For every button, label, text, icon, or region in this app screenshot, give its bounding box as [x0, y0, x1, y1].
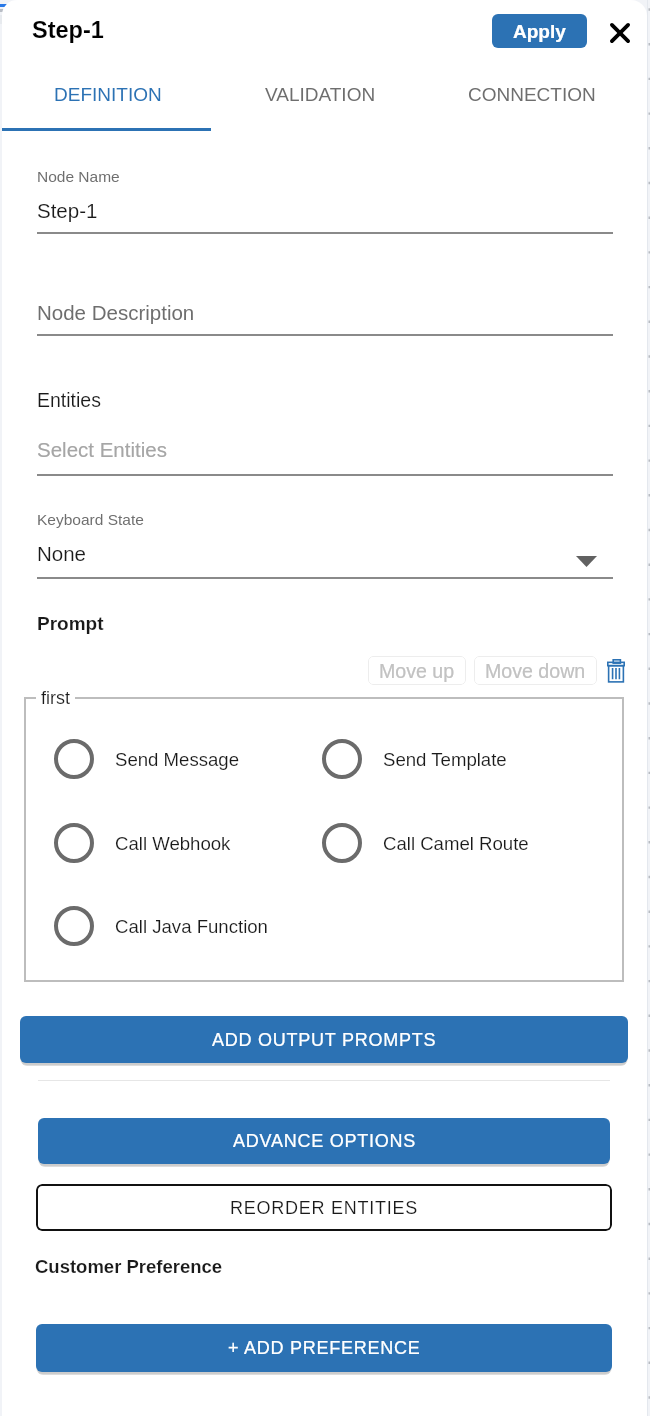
- staticText: ADVANCE OPTIONS: [233, 1131, 416, 1151]
- button[interactable]: Call Webhook: [54, 823, 322, 863]
- staticText: CONNECTION: [468, 84, 596, 105]
- button[interactable]: VALIDATION: [214, 62, 426, 131]
- staticText: Prompt: [37, 613, 104, 634]
- staticText: Step-1: [32, 17, 104, 43]
- staticText: first: [41, 688, 70, 708]
- button[interactable]: Send Message: [54, 739, 322, 779]
- staticText: Select Entities: [37, 438, 167, 461]
- button[interactable]: Call Java Function: [54, 906, 322, 946]
- staticText: Keyboard State: [37, 511, 144, 528]
- staticText: Send Template: [383, 749, 507, 770]
- button[interactable]: Send Template: [322, 739, 507, 779]
- staticText: Move up: [379, 660, 455, 682]
- button[interactable]: Call Camel Route: [322, 823, 529, 863]
- staticText: ADD OUTPUT PROMPTS: [212, 1030, 437, 1050]
- button[interactable]: Delete: [606, 656, 626, 685]
- staticText: None: [37, 542, 87, 565]
- button[interactable]: Apply: [492, 14, 587, 48]
- staticText: Step-1: [37, 199, 98, 222]
- button[interactable]: + ADD PREFERENCE: [36, 1324, 612, 1372]
- staticText: Apply: [513, 21, 566, 42]
- staticText: + ADD PREFERENCE: [228, 1338, 421, 1358]
- staticText: REORDER ENTITIES: [230, 1198, 419, 1218]
- button[interactable]: REORDER ENTITIES: [36, 1184, 612, 1231]
- button[interactable]: CONNECTION: [426, 62, 638, 131]
- button[interactable]: Close: [602, 15, 638, 51]
- staticText: Move down: [485, 660, 586, 682]
- staticText: DEFINITION: [54, 84, 162, 105]
- button[interactable]: Move down: [474, 656, 597, 685]
- staticText: Node Name: [37, 168, 120, 185]
- button[interactable]: Move up: [368, 656, 466, 685]
- staticText: VALIDATION: [265, 84, 376, 105]
- button[interactable]: DEFINITION: [2, 62, 214, 131]
- staticText: Call Java Function: [115, 916, 268, 937]
- staticText: Send Message: [115, 749, 240, 770]
- staticText: Call Webhook: [115, 833, 231, 854]
- button[interactable]: ADVANCE OPTIONS: [38, 1118, 610, 1164]
- staticText: Customer Preference: [35, 1256, 223, 1277]
- staticText: Entities: [37, 389, 101, 411]
- button[interactable]: ADD OUTPUT PROMPTS: [20, 1016, 628, 1063]
- staticText: Call Camel Route: [383, 833, 529, 854]
- staticText: Node Description: [37, 301, 195, 324]
